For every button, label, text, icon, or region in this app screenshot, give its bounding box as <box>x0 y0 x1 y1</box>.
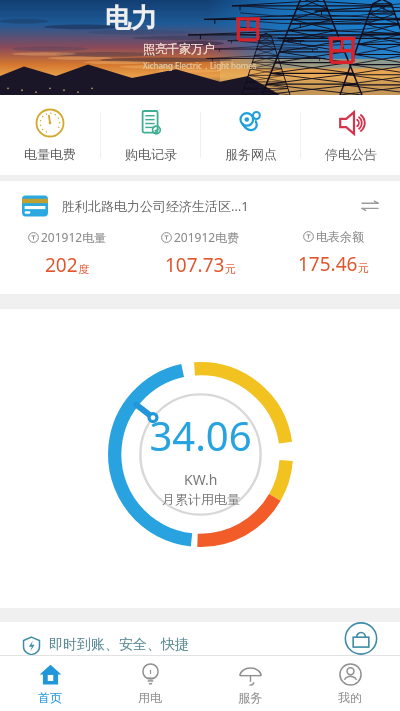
staticText: 购电记录 <box>125 146 177 162</box>
staticText: 度 <box>78 262 89 276</box>
staticText: 服务网点 <box>225 146 277 162</box>
staticText: 电量电费 <box>24 146 76 162</box>
staticText: 用电 <box>138 690 162 705</box>
staticText: 我的 <box>338 690 362 705</box>
button[interactable]: 即时到账、安全、快捷 <box>22 622 378 655</box>
button[interactable]: 切换账户 <box>358 194 382 218</box>
staticText: 107.73 <box>165 252 225 278</box>
button[interactable]: 电量电费 <box>0 95 100 175</box>
staticText: 电力 <box>105 2 157 35</box>
staticText: 服务 <box>238 690 262 705</box>
button[interactable]: 胜利北路电力公司经济生活区…1 <box>0 181 400 294</box>
staticText: 201912电费 <box>174 229 240 245</box>
staticText: 电表余额 <box>316 229 364 244</box>
button[interactable]: 首页 <box>0 656 100 711</box>
button[interactable]: 服务网点 <box>201 95 300 175</box>
button[interactable]: 购电记录 <box>101 95 200 175</box>
button[interactable]: 停电公告 <box>301 95 400 175</box>
staticText: 34.06 <box>149 408 252 462</box>
button[interactable]: 201912电量 <box>0 229 134 278</box>
staticText: 照亮千家万户 <box>143 41 215 56</box>
staticText: 202 <box>45 252 78 278</box>
staticText: KW.h <box>184 470 218 489</box>
button[interactable]: 201912电费 <box>134 229 267 278</box>
button[interactable]: 服务 <box>200 656 300 711</box>
staticText: 175.46 <box>298 251 358 277</box>
staticText: 停电公告 <box>325 146 377 162</box>
staticText: Xichang Electric，Light homes <box>143 60 257 71</box>
button[interactable]: 34.06 <box>108 362 293 547</box>
button[interactable]: 我的 <box>300 656 400 711</box>
staticText: 元 <box>358 261 369 275</box>
staticText: 月累计用电量 <box>162 491 240 507</box>
staticText: 胜利北路电力公司经济生活区…1 <box>62 197 348 215</box>
staticText: 首页 <box>38 690 62 705</box>
staticText: 即时到账、安全、快捷 <box>49 636 189 654</box>
staticText: 201912电量 <box>41 229 107 245</box>
button[interactable]: 电表余额 <box>267 229 400 277</box>
button[interactable]: 用电 <box>100 656 200 711</box>
staticText: 元 <box>225 262 236 276</box>
